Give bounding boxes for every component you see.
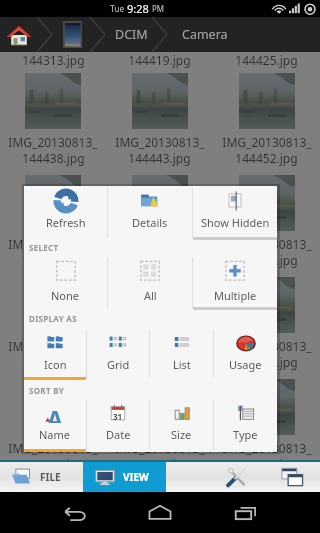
button[interactable]: Details (108, 186, 192, 240)
button[interactable]: Home (2, 17, 36, 52)
button[interactable]: Tools (208, 462, 264, 492)
staticText: FILE (40, 470, 61, 484)
staticText: 144601.jpg (128, 456, 191, 472)
staticText: Date (106, 427, 131, 442)
staticText: Show Hidden (201, 215, 270, 230)
button[interactable]: FILE (0, 462, 83, 492)
button[interactable]: Recents (215, 492, 275, 533)
button[interactable]: Camera (172, 17, 238, 52)
button[interactable]: None (24, 255, 107, 310)
button[interactable]: Refresh (24, 186, 107, 240)
staticText: DISPLAY AS (29, 313, 77, 324)
button[interactable]: Grid (87, 328, 149, 380)
button[interactable]: Type (214, 398, 277, 452)
staticText: 31 (113, 411, 123, 422)
staticText: 144523.jpg (22, 354, 85, 370)
staticText: Camera (182, 26, 228, 43)
staticText: Type (233, 427, 258, 442)
staticText: Multiple (214, 288, 257, 303)
staticText: 144611.jpg (235, 456, 298, 472)
staticText: Size (171, 427, 192, 442)
staticText: SORT BY (29, 385, 65, 396)
staticText: IMG_20130813_ (222, 236, 312, 252)
staticText: Refresh (46, 215, 86, 230)
button[interactable]: Show Hidden (193, 186, 277, 240)
staticText: 9:28 (127, 1, 152, 16)
button[interactable]: DCIM (108, 17, 154, 52)
staticText: 144501.jpg (22, 252, 85, 268)
staticText: IMG_20130813_ (222, 440, 312, 456)
staticText: 144509.jpg (128, 252, 191, 268)
staticText: 144313.jpg (22, 52, 85, 68)
staticText: 144452.jpg (235, 150, 298, 166)
button[interactable]: VIEW (83, 462, 166, 492)
button[interactable]: Device storage (57, 17, 87, 52)
button[interactable]: A (24, 398, 86, 452)
button[interactable]: Windows (264, 462, 320, 492)
staticText: Details (132, 215, 168, 230)
staticText: 144419.jpg (128, 52, 191, 68)
staticText: IMG_20130813_ (115, 236, 205, 252)
staticText: Tue (110, 3, 127, 15)
staticText: None (51, 288, 80, 303)
staticText: 144552.jpg (22, 456, 85, 472)
staticText: IMG_20130813_ (222, 338, 312, 354)
staticText: List (173, 357, 191, 372)
staticText: 144438.jpg (22, 150, 85, 166)
button[interactable]: All (108, 255, 192, 310)
staticText: Grid (107, 357, 130, 372)
staticText: 144517.jpg (235, 252, 298, 268)
button[interactable]: Usage (214, 328, 277, 380)
button[interactable]: Back (45, 492, 105, 533)
staticText: PM (152, 3, 165, 14)
staticText: 144443.jpg (128, 150, 191, 166)
button[interactable]: List (150, 328, 213, 380)
staticText: VIEW (123, 470, 149, 484)
button[interactable]: Multiple (193, 255, 277, 310)
button[interactable]: Home (130, 492, 190, 533)
staticText: IMG_20130813_ (8, 338, 98, 354)
staticText: 144425.jpg (235, 52, 298, 68)
staticText: 144540.jpg (235, 354, 298, 370)
staticText: 144531.jpg (128, 354, 191, 370)
staticText: IMG_20130813_ (115, 440, 205, 456)
button[interactable]: Size (150, 398, 213, 452)
staticText: Usage (229, 357, 262, 372)
staticText: IMG_20130813_ (8, 440, 98, 456)
button[interactable]: Icon (24, 328, 86, 380)
staticText: IMG_20130813_ (8, 134, 98, 150)
staticText: DCIM (115, 26, 148, 43)
staticText: Name (39, 427, 71, 442)
staticText: IMG_20130813_ (115, 338, 205, 354)
staticText: Icon (44, 357, 67, 372)
staticText: IMG_20130813_ (115, 134, 205, 150)
staticText: All (144, 288, 157, 303)
button[interactable]: 31 (87, 398, 149, 452)
staticText: SELECT (29, 242, 59, 253)
staticText: IMG_20130813_ (222, 134, 312, 150)
staticText: IMG_20130813_ (8, 236, 98, 252)
staticText: A (47, 403, 63, 423)
